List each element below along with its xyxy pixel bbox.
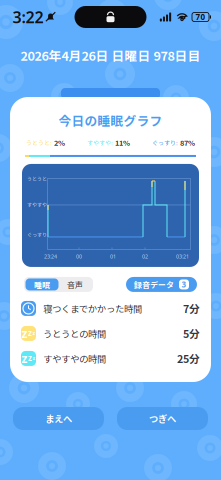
staticText: 7分: [183, 301, 200, 316]
staticText: 今日の睡眠グラフ: [58, 111, 162, 129]
staticText: 音声: [67, 279, 83, 290]
staticText: 03:21: [176, 253, 189, 260]
staticText: z: [22, 325, 28, 341]
staticText: 87%: [178, 137, 195, 148]
staticText: 寝つくまでかかった時間: [43, 302, 142, 315]
staticText: うとうと: [27, 175, 47, 182]
staticText: 23:24: [44, 253, 57, 260]
staticText: まえへ: [45, 412, 72, 425]
button[interactable]: まえへ: [13, 407, 104, 430]
staticText: つぎへ: [149, 412, 176, 425]
staticText: 2026年4月26日 日曜日 978日目: [20, 46, 200, 64]
staticText: 2%: [52, 137, 65, 148]
staticText: 録音データ: [134, 279, 174, 290]
staticText: 25分: [177, 351, 200, 366]
staticText: ぐっすり: [27, 231, 47, 238]
staticText: すやすや: [27, 201, 47, 208]
staticText: うとうとの時間: [43, 327, 106, 340]
staticText: z: [32, 354, 35, 362]
staticText: z: [28, 327, 32, 338]
staticText: ぐっすり:: [152, 138, 178, 147]
staticText: z: [22, 350, 28, 366]
staticText: 睡眠: [34, 279, 50, 290]
button[interactable]: 音声: [58, 278, 91, 290]
staticText: z: [32, 329, 35, 337]
staticText: すやすや:: [87, 138, 113, 147]
staticText: 3:22: [12, 6, 43, 28]
button[interactable]: z: [10, 346, 211, 371]
staticText: 00: [76, 253, 82, 260]
staticText: 70: [195, 12, 205, 22]
button[interactable]: つぎへ: [117, 407, 208, 430]
staticText: 02: [142, 253, 148, 260]
staticText: 11%: [113, 137, 130, 148]
staticText: 5分: [183, 326, 200, 341]
button[interactable]: 寝つくまでかかった時間: [10, 296, 211, 321]
button[interactable]: 睡眠: [25, 278, 58, 290]
staticText: 01: [110, 253, 116, 260]
button[interactable]: 録音データ: [126, 277, 197, 292]
staticText: すやすやの時間: [43, 352, 106, 365]
staticText: 3: [181, 279, 186, 290]
button[interactable]: z: [10, 321, 211, 346]
staticText: z: [28, 352, 32, 363]
staticText: うとうと:: [26, 138, 52, 147]
